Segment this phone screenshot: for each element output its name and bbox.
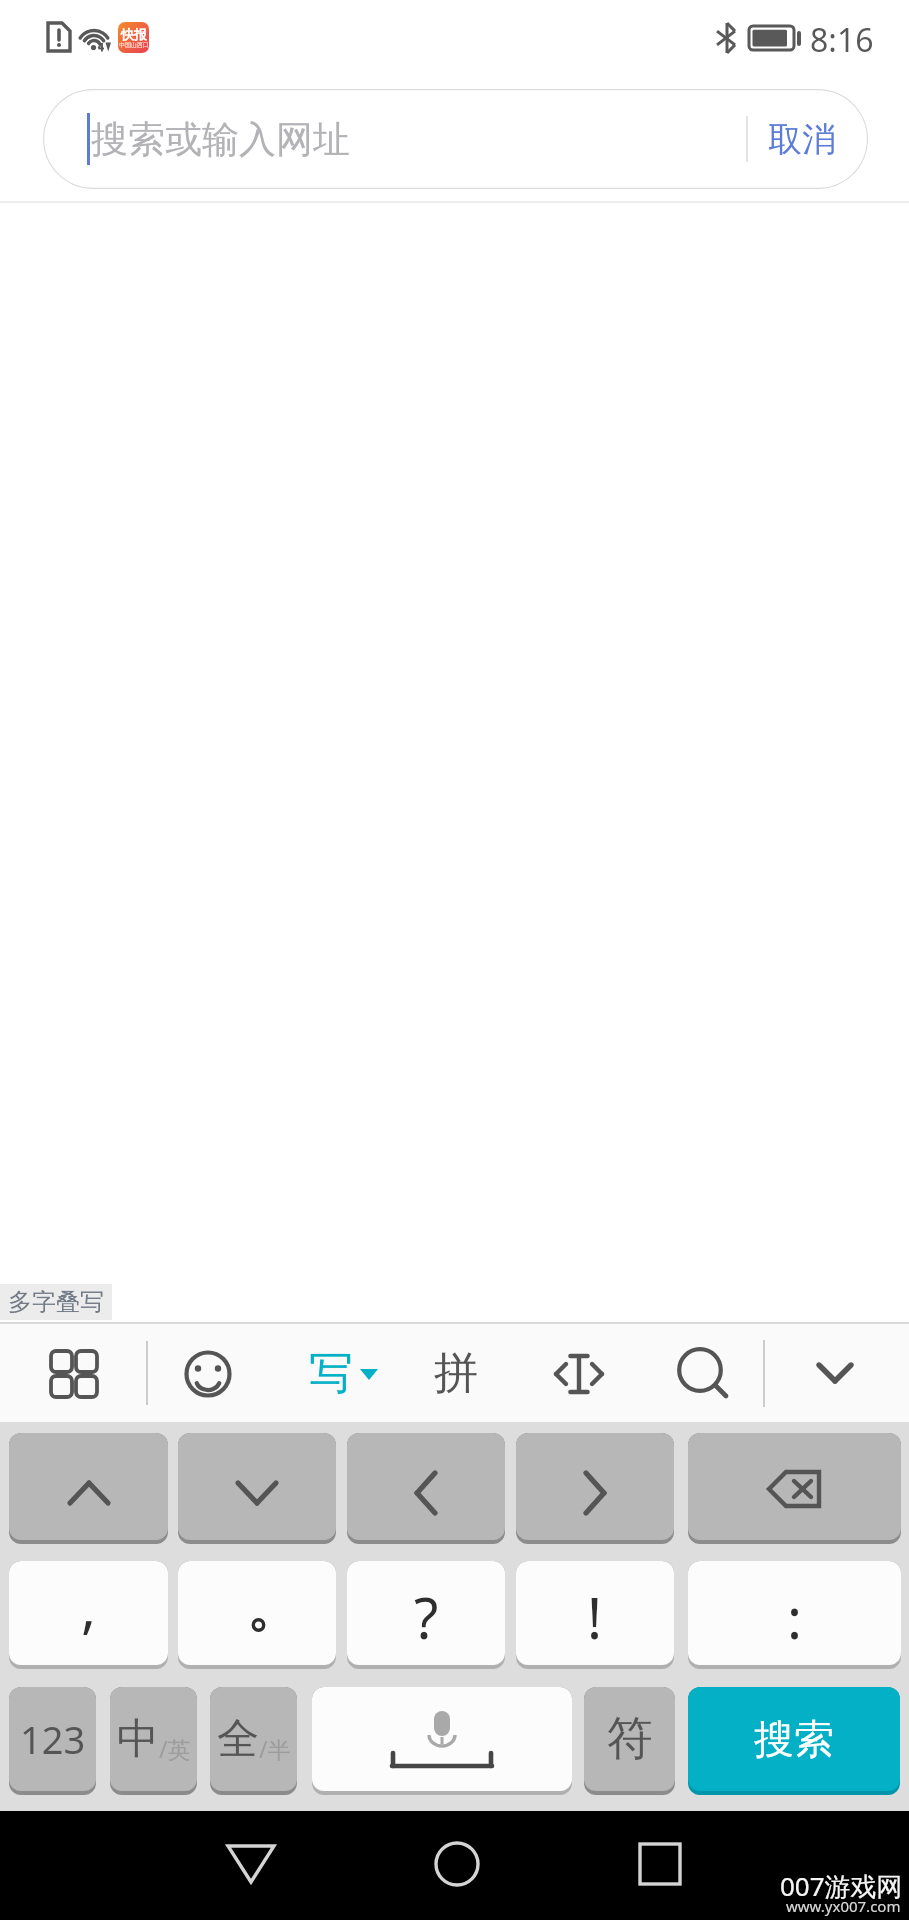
staticText: 取消 [768, 118, 836, 161]
staticText: /英 [159, 1733, 191, 1764]
staticText: 8:16 [810, 18, 874, 62]
staticText: 中 [117, 1713, 159, 1766]
button[interactable]: 写 [283, 1324, 403, 1423]
button[interactable]: : [688, 1561, 901, 1665]
button[interactable]: 拼 [408, 1324, 504, 1423]
button[interactable]: Chinese English toggle [110, 1687, 197, 1791]
staticText: , [81, 1568, 97, 1644]
staticText: ! [587, 1579, 603, 1655]
staticText: 123 [20, 1713, 86, 1765]
button[interactable]: Hide keyboard [790, 1324, 880, 1423]
button[interactable]: 取消 [742, 89, 862, 189]
button[interactable]: Backspace [688, 1433, 901, 1540]
button[interactable] [178, 1561, 336, 1665]
button[interactable]: Move cursor [527, 1324, 631, 1423]
button[interactable]: Recent apps [590, 1811, 730, 1920]
staticText: 007游戏网 [780, 1868, 903, 1904]
staticText: 多字叠写 [8, 1287, 104, 1317]
button[interactable]: Symbols [584, 1687, 675, 1791]
staticText: 拼 [434, 1346, 478, 1401]
button[interactable]: 多字叠写 [0, 1284, 112, 1320]
button[interactable]: Keyboard layouts [26, 1324, 122, 1423]
staticText: /半 [259, 1733, 291, 1764]
button[interactable]: Space [312, 1687, 572, 1791]
staticText: 符 [607, 1710, 653, 1768]
button[interactable]: Move up [9, 1433, 168, 1540]
button[interactable]: Move right [516, 1433, 674, 1540]
button[interactable]: Numbers [9, 1687, 96, 1791]
button[interactable]: , [9, 1561, 168, 1665]
button[interactable]: Move down [178, 1433, 336, 1540]
button[interactable]: Move left [347, 1433, 505, 1540]
staticText: 快报 [121, 26, 147, 42]
staticText: : [787, 1579, 803, 1655]
staticText: 搜索 [754, 1714, 834, 1764]
button[interactable]: Full half width toggle [210, 1687, 297, 1791]
button[interactable]: ! [516, 1561, 674, 1665]
staticText: 写 [309, 1346, 353, 1401]
staticText: 全 [217, 1713, 259, 1766]
staticText: www.yx007.com [786, 1896, 901, 1916]
staticText: 搜索或输入网址 [91, 116, 350, 163]
button[interactable]: Emoji [165, 1324, 251, 1423]
staticText: 中国山西口 [119, 41, 149, 49]
staticText: ? [414, 1579, 439, 1655]
button[interactable]: ? [347, 1561, 505, 1665]
button[interactable]: Back [181, 1811, 321, 1920]
button[interactable]: Search [657, 1324, 751, 1423]
button[interactable]: 搜索 [688, 1687, 900, 1791]
button[interactable]: Home [387, 1811, 527, 1920]
button[interactable]: 搜索或输入网址 [43, 89, 868, 189]
